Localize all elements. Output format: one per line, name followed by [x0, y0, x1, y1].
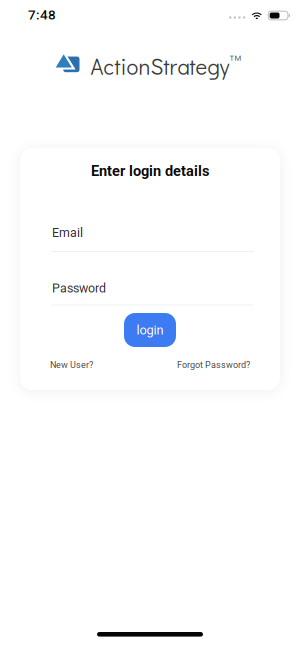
button[interactable]: Email	[51, 225, 254, 252]
staticText: New User?	[50, 359, 93, 370]
staticText: ActionStrategy	[90, 51, 229, 80]
staticText: TM	[229, 53, 241, 63]
button[interactable]: login	[124, 313, 176, 347]
button[interactable]: Password	[51, 281, 254, 305]
button[interactable]: New User?	[50, 359, 93, 370]
button[interactable]: Forgot Password?	[177, 359, 250, 370]
staticText: Email	[52, 225, 83, 240]
staticText: Forgot Password?	[177, 359, 250, 370]
staticText: 7:48	[28, 7, 56, 23]
staticText: Enter login details	[91, 162, 209, 179]
staticText: login	[136, 322, 163, 337]
staticText: Password	[52, 281, 106, 295]
